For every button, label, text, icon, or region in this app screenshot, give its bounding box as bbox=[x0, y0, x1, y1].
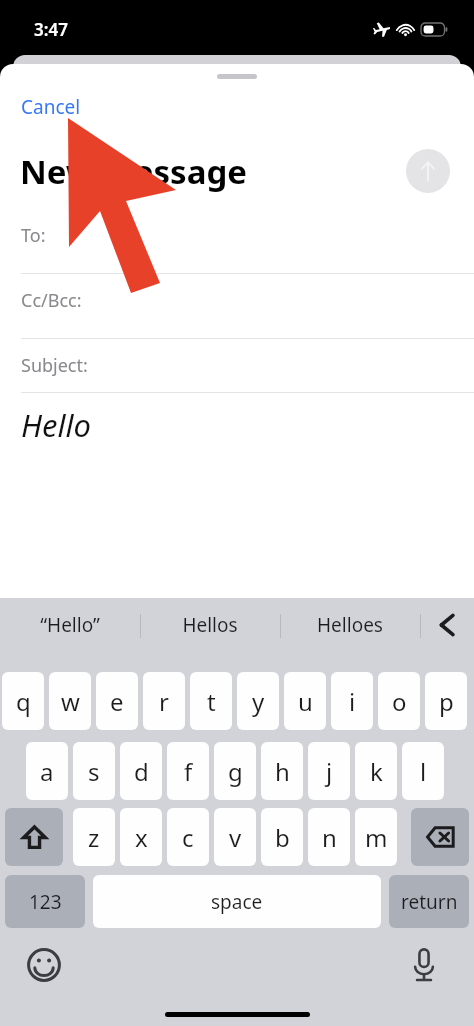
button[interactable]: Previous suggestion bbox=[420, 598, 474, 652]
button[interactable]: d bbox=[120, 742, 162, 800]
staticText: To: bbox=[21, 223, 46, 248]
staticText: v bbox=[229, 821, 242, 854]
button[interactable]: s bbox=[73, 742, 115, 800]
staticText: q bbox=[16, 685, 31, 718]
button[interactable]: Hellos bbox=[140, 598, 280, 652]
staticText: return bbox=[401, 889, 458, 915]
staticText: p bbox=[439, 685, 454, 718]
staticText: n bbox=[322, 821, 337, 854]
button[interactable]: i bbox=[331, 672, 373, 730]
staticText: w bbox=[61, 685, 80, 718]
button[interactable]: m bbox=[355, 808, 397, 866]
staticText: New Message bbox=[20, 149, 247, 194]
button[interactable]: k bbox=[355, 742, 397, 800]
staticText: Helloes bbox=[317, 612, 383, 638]
button[interactable]: Emoji bbox=[20, 941, 68, 989]
staticText: k bbox=[370, 755, 383, 788]
button[interactable]: To: bbox=[0, 209, 474, 262]
button[interactable]: x bbox=[120, 808, 162, 866]
button[interactable]: Dictation bbox=[400, 941, 448, 989]
staticText: c bbox=[182, 821, 194, 854]
button[interactable]: Cancel bbox=[10, 89, 92, 125]
staticText: l bbox=[420, 755, 427, 788]
button[interactable]: w bbox=[49, 672, 91, 730]
staticText: Cancel bbox=[21, 94, 81, 120]
button[interactable]: Send bbox=[406, 149, 450, 193]
button[interactable]: b bbox=[261, 808, 303, 866]
staticText: f bbox=[184, 755, 193, 788]
staticText: t bbox=[207, 685, 216, 718]
button[interactable]: u bbox=[284, 672, 326, 730]
button[interactable]: y bbox=[237, 672, 279, 730]
button[interactable]: space bbox=[93, 875, 381, 928]
button[interactable]: j bbox=[308, 742, 350, 800]
button[interactable]: q bbox=[2, 672, 44, 730]
button[interactable]: Hello bbox=[21, 404, 91, 446]
button[interactable]: r bbox=[143, 672, 185, 730]
button[interactable]: return bbox=[389, 875, 469, 928]
button[interactable]: v bbox=[214, 808, 256, 866]
staticText: 123 bbox=[29, 889, 62, 915]
staticText: u bbox=[298, 685, 313, 718]
staticText: Subject: bbox=[21, 353, 88, 378]
staticText: b bbox=[275, 821, 290, 854]
button[interactable]: “Hello” bbox=[0, 598, 140, 652]
staticText: i bbox=[349, 685, 356, 718]
button[interactable]: z bbox=[73, 808, 115, 866]
button[interactable]: a bbox=[26, 742, 68, 800]
button[interactable]: 123 bbox=[5, 875, 85, 928]
staticText: y bbox=[252, 685, 265, 718]
staticText: r bbox=[159, 685, 169, 718]
button[interactable]: o bbox=[378, 672, 420, 730]
staticText: d bbox=[134, 755, 149, 788]
button[interactable]: Cc/Bcc: bbox=[0, 274, 474, 327]
button[interactable]: Helloes bbox=[280, 598, 420, 652]
staticText: x bbox=[135, 821, 148, 854]
button[interactable]: e bbox=[96, 672, 138, 730]
button[interactable]: f bbox=[167, 742, 209, 800]
button[interactable]: l bbox=[402, 742, 444, 800]
button[interactable]: t bbox=[190, 672, 232, 730]
button[interactable]: Subject: bbox=[0, 339, 474, 392]
staticText: s bbox=[88, 755, 100, 788]
staticText: a bbox=[40, 755, 54, 788]
staticText: z bbox=[88, 821, 100, 854]
button[interactable]: c bbox=[167, 808, 209, 866]
button[interactable]: Shift bbox=[5, 808, 63, 866]
button[interactable]: g bbox=[214, 742, 256, 800]
staticText: g bbox=[228, 755, 243, 788]
staticText: m bbox=[365, 821, 388, 854]
button[interactable]: p bbox=[425, 672, 467, 730]
button[interactable]: Backspace bbox=[411, 808, 469, 866]
staticText: o bbox=[392, 685, 407, 718]
staticText: 3:47 bbox=[34, 18, 68, 41]
staticText: h bbox=[275, 755, 290, 788]
staticText: Hellos bbox=[182, 612, 238, 638]
staticText: j bbox=[326, 755, 333, 788]
button[interactable]: n bbox=[308, 808, 350, 866]
button[interactable]: h bbox=[261, 742, 303, 800]
staticText: Cc/Bcc: bbox=[21, 288, 82, 313]
staticText: “Hello” bbox=[40, 612, 100, 638]
staticText: e bbox=[110, 685, 124, 718]
staticText: space bbox=[211, 889, 263, 915]
